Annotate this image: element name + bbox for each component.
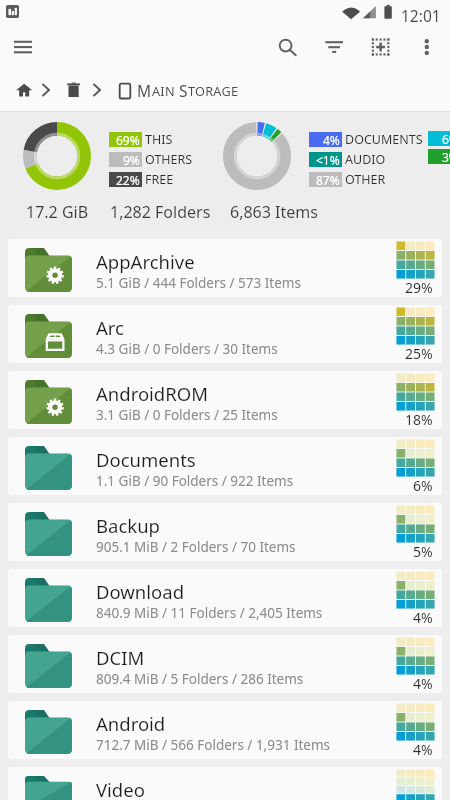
button[interactable]: Video <box>8 767 442 800</box>
button[interactable]: Arc <box>8 305 442 363</box>
staticText: 712.7 MiB / 566 Folders / 1,931 Items <box>96 736 331 754</box>
button[interactable]: Home <box>8 74 40 106</box>
staticText: 6% <box>442 131 450 146</box>
staticText: <1% <box>316 152 340 167</box>
staticText: OTHER <box>345 171 386 188</box>
button[interactable]: Trash <box>58 74 90 106</box>
staticText: 4% <box>413 674 433 693</box>
button[interactable]: Open navigation drawer <box>3 27 43 67</box>
staticText: M <box>137 80 152 101</box>
staticText: 17.2 GiB <box>26 201 89 223</box>
staticText: TORAGE <box>188 82 239 99</box>
staticText: DCIM <box>96 645 145 670</box>
staticText: DOCUMENTS <box>345 131 423 148</box>
staticText: 18% <box>405 410 433 429</box>
staticText: 5.1 GiB / 444 Folders / 573 Items <box>96 274 301 292</box>
staticText: OTHERS <box>145 151 193 168</box>
staticText: S <box>179 80 188 101</box>
staticText: 87% <box>316 172 340 187</box>
button[interactable]: Select all <box>361 26 401 66</box>
staticText: 3.1 GiB / 0 Folders / 25 Items <box>96 406 278 424</box>
staticText: 5% <box>413 542 433 561</box>
staticText: Documents <box>96 447 196 472</box>
button[interactable]: Search <box>266 26 306 66</box>
staticText: 1.1 GiB / 90 Folders / 922 Items <box>96 472 294 490</box>
button[interactable]: AppArchive <box>8 239 442 297</box>
staticText: 6,863 Items <box>230 201 318 223</box>
staticText: 9% <box>123 152 140 167</box>
button[interactable]: Sort <box>314 26 354 66</box>
button[interactable]: More options <box>407 26 447 66</box>
staticText: 69% <box>116 132 140 147</box>
staticText: 29% <box>405 278 433 297</box>
staticText: 3% <box>442 149 450 164</box>
staticText: 4.3 GiB / 0 Folders / 30 Items <box>96 340 278 358</box>
button[interactable]: Documents <box>8 437 442 495</box>
staticText: Video <box>96 777 145 800</box>
staticText: 4% <box>413 608 433 627</box>
staticText: 1,282 Folders <box>110 201 211 223</box>
staticText: 4% <box>413 740 433 759</box>
staticText: Android <box>96 711 166 736</box>
staticText: 25% <box>405 344 433 363</box>
button[interactable]: Android <box>8 701 442 759</box>
button[interactable]: AndroidROM <box>8 371 442 429</box>
staticText: 22% <box>116 172 140 187</box>
staticText: THIS <box>145 131 173 148</box>
staticText: Arc <box>96 315 124 340</box>
button[interactable]: Backup <box>8 503 442 561</box>
staticText: 6% <box>413 476 433 495</box>
staticText: AppArchive <box>96 249 195 274</box>
staticText: Download <box>96 579 185 604</box>
staticText: AUDIO <box>345 151 386 168</box>
staticText: 12:01 <box>401 5 441 26</box>
staticText: AndroidROM <box>96 381 208 406</box>
button[interactable]: DCIM <box>8 635 442 693</box>
staticText: 809.4 MiB / 5 Folders / 286 Items <box>96 670 304 688</box>
staticText: 905.1 MiB / 2 Folders / 70 Items <box>96 538 296 556</box>
staticText: Backup <box>96 513 160 538</box>
staticText: 4% <box>323 132 340 147</box>
button[interactable]: Main storage device <box>108 74 140 106</box>
staticText: 840.9 MiB / 11 Folders / 2,405 Items <box>96 604 323 622</box>
button[interactable]: Download <box>8 569 442 627</box>
staticText: AIN <box>152 82 179 99</box>
staticText: FREE <box>145 171 174 188</box>
